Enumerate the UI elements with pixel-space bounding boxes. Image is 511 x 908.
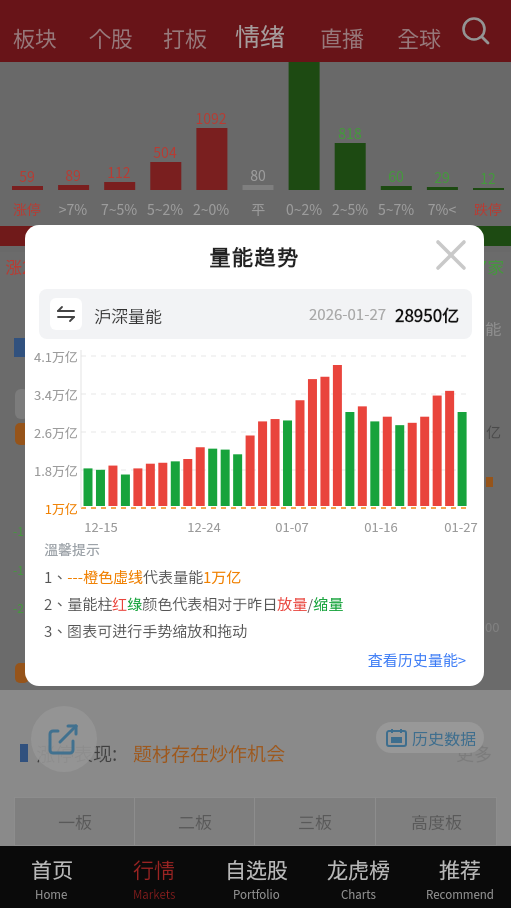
staticText: 推荐 xyxy=(439,854,481,884)
staticText: 查看历史量能> xyxy=(345,649,466,671)
staticText: Recommend xyxy=(426,886,494,903)
button[interactable] xyxy=(31,706,97,772)
staticText: 直播 xyxy=(320,21,365,53)
staticText: 7%< xyxy=(419,199,465,219)
staticText: 涨停表现: xyxy=(36,739,118,767)
staticText: 首页 xyxy=(31,854,73,884)
staticText: 2~5% xyxy=(327,199,373,219)
staticText: 1万亿 xyxy=(33,499,78,518)
staticText: 跌停 xyxy=(465,199,511,219)
staticText: 三板 xyxy=(298,809,332,834)
staticText: 龙虎榜 xyxy=(327,854,390,884)
button[interactable]: 情绪 xyxy=(228,10,293,60)
button[interactable] xyxy=(431,235,471,275)
staticText: >7% xyxy=(50,199,96,219)
staticText: 112 xyxy=(96,162,142,182)
staticText: 80 xyxy=(235,165,281,185)
staticText: 个股 xyxy=(89,21,134,53)
staticText: 温馨提示 xyxy=(44,539,100,559)
button[interactable]: 全球 xyxy=(390,14,449,60)
staticText: 12 xyxy=(465,168,511,188)
staticText: 平 xyxy=(235,199,281,219)
staticText: 涨停 xyxy=(4,199,50,219)
button[interactable]: 个股 xyxy=(82,14,141,60)
staticText: 2、量能柱红绿颜色代表相对于昨日放量/缩量 xyxy=(44,593,344,615)
staticText: 29 xyxy=(419,167,465,187)
staticText: 自选股 xyxy=(225,854,288,884)
button[interactable]: 二板 xyxy=(135,798,254,845)
staticText: 2026-01-27 xyxy=(309,303,387,325)
staticText: Home xyxy=(35,886,68,903)
staticText: 01-27 xyxy=(436,517,484,536)
staticText: 0~2% xyxy=(281,199,327,219)
button[interactable]: 推荐 xyxy=(409,846,511,908)
button[interactable]: 板块 xyxy=(6,14,65,60)
staticText: 沪深量能 xyxy=(94,303,162,328)
button[interactable]: 沪深量能 xyxy=(39,289,472,339)
staticText: 01-07 xyxy=(267,517,317,536)
staticText: 题材存在炒作机会 xyxy=(133,739,286,767)
button[interactable] xyxy=(458,14,494,50)
staticText: 情绪 xyxy=(235,17,286,53)
staticText: 1092 xyxy=(188,108,234,128)
staticText: 504 xyxy=(142,142,188,162)
staticText: 历史数据 xyxy=(412,726,477,749)
staticText: 818 xyxy=(327,123,373,143)
button[interactable]: 自选股 xyxy=(205,846,307,908)
staticText: 12-24 xyxy=(179,517,229,536)
staticText: 能 xyxy=(485,316,502,339)
staticText: 1、---橙色虚线代表量能1万亿 xyxy=(44,566,242,588)
staticText: 12-15 xyxy=(76,517,126,536)
staticText: -1 xyxy=(13,522,24,539)
button[interactable]: 龙虎榜 xyxy=(307,846,409,908)
button[interactable]: 高度板 xyxy=(376,798,496,845)
button[interactable]: 一板 xyxy=(15,798,134,845)
staticText: 5~7% xyxy=(373,199,419,219)
button[interactable]: 直播 xyxy=(313,14,372,60)
staticText: 涨2981家 xyxy=(5,254,77,279)
button[interactable]: 首页 xyxy=(0,846,103,908)
button[interactable]: 更多 xyxy=(452,736,496,770)
staticText: 打板 xyxy=(163,21,208,53)
staticText: 量能趋势 xyxy=(25,241,484,271)
staticText: 高度板 xyxy=(411,809,462,834)
staticText: 5~2% xyxy=(142,199,188,219)
staticText: 板块 xyxy=(13,21,58,53)
staticText: Markets xyxy=(133,886,176,903)
button[interactable]: 历史数据 xyxy=(376,722,484,753)
staticText: 一板 xyxy=(58,809,92,834)
staticText: 01-16 xyxy=(356,517,406,536)
staticText: 28950亿 xyxy=(395,302,460,327)
staticText: Portfolio xyxy=(233,886,280,903)
staticText: 2.6万亿 xyxy=(33,423,78,442)
staticText: 行情 xyxy=(133,854,175,884)
staticText: 3、图表可进行手势缩放和拖动 xyxy=(44,620,248,642)
button[interactable]: 三板 xyxy=(255,798,375,845)
staticText: 1.8万亿 xyxy=(33,461,78,480)
staticText: 全球 xyxy=(397,21,442,53)
button[interactable]: 行情 xyxy=(103,846,205,908)
staticText: 亿 xyxy=(486,421,502,443)
staticText: -1 xyxy=(13,561,24,578)
staticText: 3.4万亿 xyxy=(33,385,78,404)
staticText: 更多 xyxy=(456,740,492,766)
staticText: 60 xyxy=(373,166,419,186)
staticText: 7~5% xyxy=(96,199,142,219)
button[interactable]: 查看历史量能> xyxy=(345,649,466,671)
button[interactable]: 打板 xyxy=(156,14,215,60)
staticText: 2~0% xyxy=(188,199,234,219)
staticText: -2 xyxy=(13,599,24,616)
staticText: 59 xyxy=(4,166,50,186)
staticText: 跌1987家 xyxy=(376,254,504,279)
staticText: Charts xyxy=(341,886,376,903)
staticText: 二板 xyxy=(178,809,212,834)
staticText: 4.1万亿 xyxy=(33,347,78,366)
staticText: 89 xyxy=(50,165,96,185)
staticText: 00 xyxy=(485,617,500,636)
